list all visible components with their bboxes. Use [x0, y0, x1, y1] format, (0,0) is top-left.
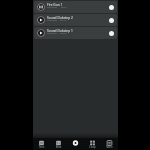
button[interactable]: Fire Gun 1: [34, 1, 117, 13]
staticText: Dubstep: [47, 31, 57, 34]
button[interactable]: Options: [109, 18, 114, 23]
button[interactable]: Tone: [33, 138, 50, 150]
button[interactable]: Options: [109, 5, 114, 10]
button[interactable]: Record: [67, 138, 84, 150]
staticText: Sound Dubstep 1: [47, 29, 73, 33]
staticText: 00:09: [60, 31, 67, 34]
button[interactable]: Loop: [84, 138, 101, 150]
staticText: More: [101, 145, 118, 149]
staticText: Fire Gun 1: [47, 3, 63, 7]
staticText: Beat: [50, 145, 67, 149]
staticText: 00:01: [61, 5, 68, 8]
button[interactable]: More: [101, 138, 118, 150]
button[interactable]: Sound Dubstep 2: [34, 14, 117, 26]
button[interactable]: Sound Dubstep 1: [34, 27, 117, 39]
button[interactable]: Options: [109, 31, 114, 36]
staticText: 00:12: [60, 18, 67, 21]
staticText: Loop: [84, 145, 101, 149]
staticText: Gunshot: [47, 5, 58, 8]
staticText: Sound Dubstep 2: [47, 16, 73, 20]
staticText: Tone: [33, 145, 50, 149]
button[interactable]: Beat: [50, 138, 67, 150]
staticText: Dubstep: [47, 18, 57, 21]
